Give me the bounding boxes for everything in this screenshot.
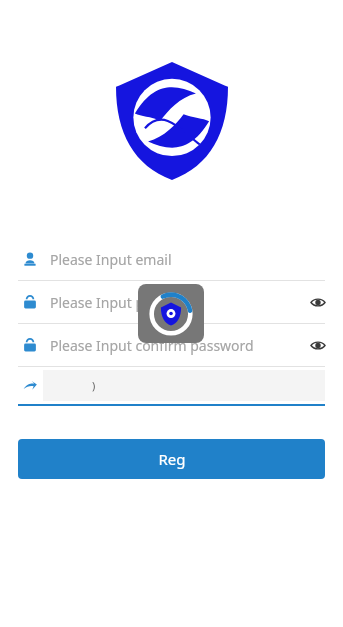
button[interactable]: Show password <box>303 330 333 360</box>
button[interactable]: Confirm password <box>0 324 343 366</box>
staticText: Please Input password <box>50 293 199 312</box>
button[interactable]: Invite code <box>0 367 343 406</box>
staticText: Please Input email <box>50 250 172 269</box>
staticText: ) <box>92 378 96 393</box>
other: Email <box>22 251 38 267</box>
other: Password <box>22 294 38 310</box>
staticText: Reg <box>158 449 186 469</box>
other: Invite code <box>22 378 38 394</box>
button[interactable]: Email <box>0 238 343 280</box>
other: Confirm password <box>22 337 38 353</box>
staticText: Please Input confirm password <box>50 336 254 355</box>
button[interactable]: Show password <box>303 287 333 317</box>
button[interactable]: Reg <box>18 439 325 479</box>
button[interactable]: Password <box>0 281 343 323</box>
